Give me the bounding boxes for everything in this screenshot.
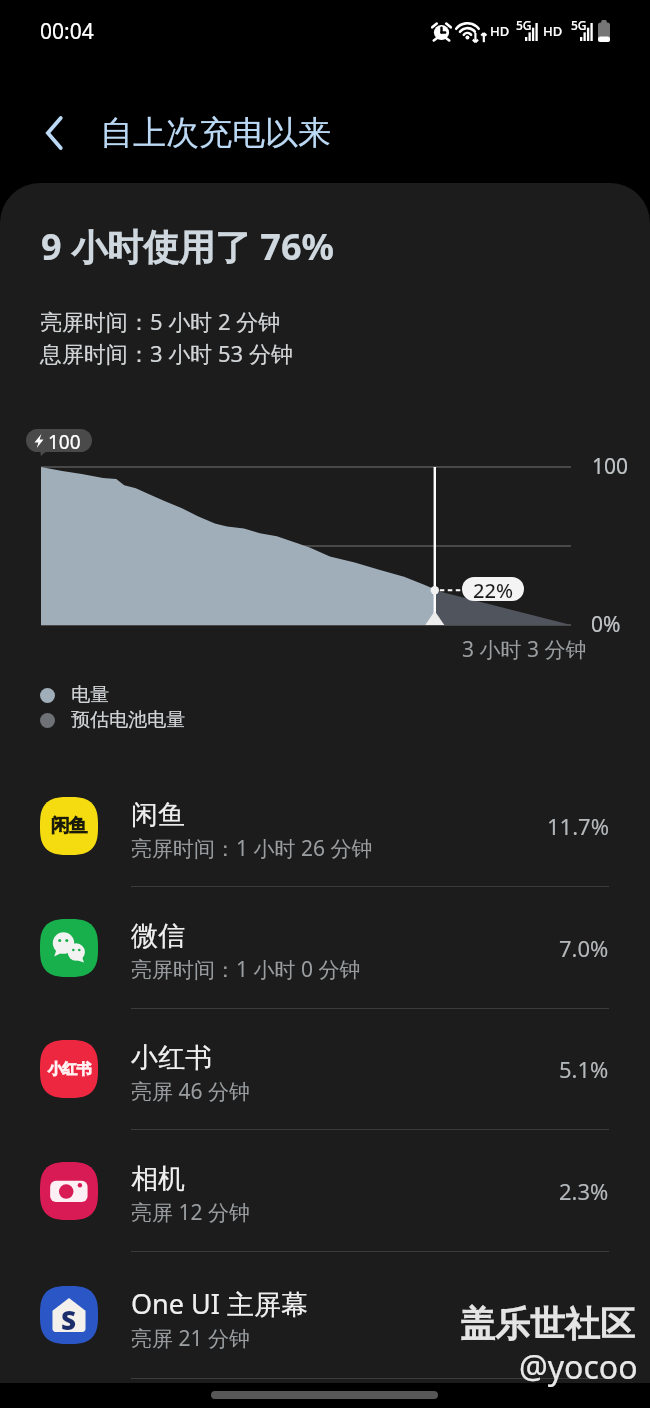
- button[interactable]: 相机: [0, 1130, 650, 1252]
- staticText: 微信: [131, 919, 185, 953]
- staticText: @yocoo: [519, 1345, 638, 1389]
- staticText: 亮屏时间：1 小时 26 分钟: [131, 834, 373, 863]
- button[interactable]: 小红书: [0, 1009, 650, 1130]
- staticText: 100: [592, 452, 629, 481]
- staticText: 5G: [571, 17, 587, 33]
- staticText: HD: [543, 22, 563, 40]
- staticText: 亮屏 12 分钟: [131, 1198, 250, 1227]
- staticText: One UI 主屏幕: [131, 1285, 308, 1322]
- staticText: 闲鱼: [131, 798, 185, 832]
- staticText: 3 小时 3 分钟: [462, 635, 587, 664]
- staticText: 闲鱼: [51, 814, 87, 838]
- staticText: HD: [490, 22, 510, 40]
- staticText: 亮屏时间：1 小时 0 分钟: [131, 955, 361, 984]
- staticText: 亮屏 21 分钟: [131, 1324, 250, 1353]
- staticText: 5G: [516, 17, 532, 33]
- staticText: 盖乐世社区: [460, 1302, 635, 1346]
- staticText: 自上次充电以来: [100, 112, 331, 154]
- staticText: 7.0%: [559, 933, 609, 963]
- button[interactable]: 闲鱼: [0, 766, 650, 887]
- staticText: 5.1%: [559, 1054, 609, 1084]
- staticText: 2.3%: [559, 1176, 609, 1206]
- staticText: S: [61, 1302, 77, 1337]
- staticText: 相机: [131, 1162, 185, 1196]
- button[interactable]: 微信: [0, 887, 650, 1009]
- staticText: 电量: [71, 683, 109, 707]
- staticText: 小红书: [48, 1060, 91, 1079]
- staticText: 预估电池电量: [71, 708, 185, 732]
- staticText: 小红书: [131, 1041, 212, 1075]
- staticText: 亮屏时间：5 小时 2 分钟: [40, 306, 281, 336]
- staticText: 100: [48, 429, 81, 452]
- staticText: 11.7%: [547, 811, 609, 841]
- staticText: 00:04: [40, 17, 94, 46]
- staticText: 9 小时使用了 76%: [41, 222, 334, 271]
- staticText: 22%: [473, 577, 513, 601]
- staticText: 亮屏 46 分钟: [131, 1077, 250, 1106]
- staticText: 息屏时间：3 小时 53 分钟: [40, 338, 293, 368]
- button[interactable]: Back: [30, 107, 82, 159]
- staticText: 0%: [591, 610, 621, 639]
- button[interactable]: S: [0, 1252, 650, 1379]
